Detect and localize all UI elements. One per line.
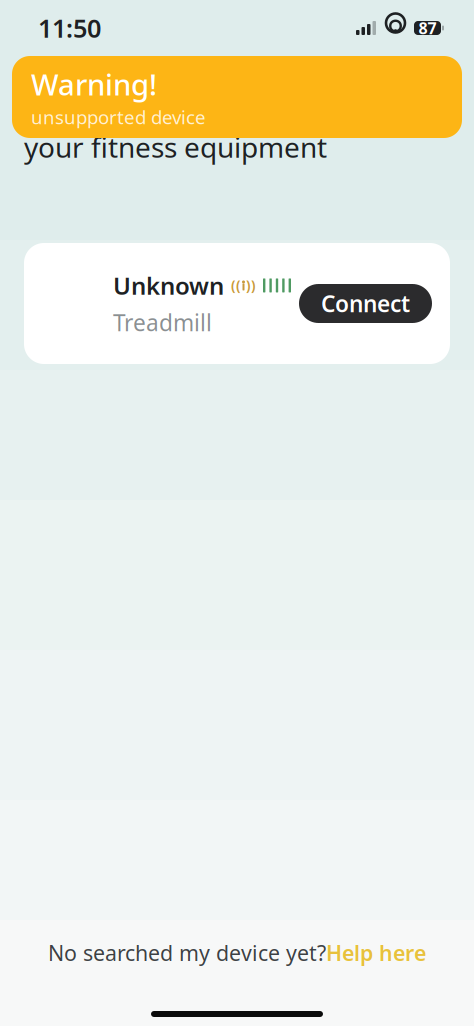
- staticText: Unknown: [113, 269, 224, 301]
- staticText: Searching: [24, 66, 246, 126]
- staticText: Treadmill: [113, 307, 212, 337]
- button[interactable]: Connect to Unknown Treadmill: [24, 243, 450, 364]
- staticText: 11:50: [38, 11, 101, 45]
- staticText: No searched my device yet?: [48, 939, 326, 967]
- staticText: Help here: [326, 939, 426, 967]
- staticText: )): [246, 277, 256, 294]
- staticText: unsupported device: [31, 105, 206, 129]
- staticText: ((: [231, 277, 241, 294]
- staticText: your fitness equipment: [24, 128, 327, 165]
- staticText: 87: [418, 17, 436, 39]
- staticText: Warning!: [31, 65, 157, 104]
- button[interactable]: Help here: [326, 939, 426, 967]
- staticText: Connect: [321, 288, 410, 318]
